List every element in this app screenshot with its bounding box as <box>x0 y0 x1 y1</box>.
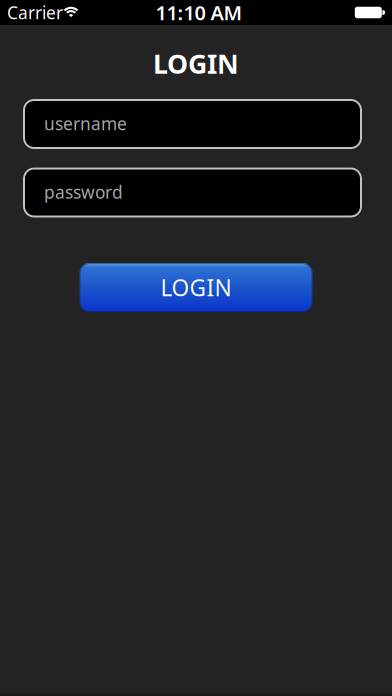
staticText: LOGIN <box>153 46 239 81</box>
button[interactable]: username <box>23 99 362 149</box>
staticText: 11:10 AM <box>155 0 242 26</box>
button[interactable]: password <box>23 167 362 217</box>
staticText: password <box>44 180 123 203</box>
staticText: LOGIN <box>160 272 231 302</box>
button[interactable]: LOGIN <box>79 263 312 312</box>
staticText: Carrier <box>7 1 63 24</box>
staticText: username <box>44 112 127 135</box>
